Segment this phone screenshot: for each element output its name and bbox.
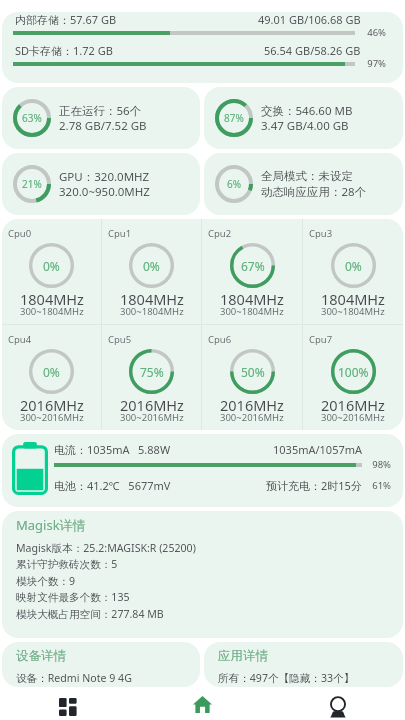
- staticText: 全局模式：未设定: [261, 169, 353, 184]
- staticText: 97%: [364, 57, 386, 70]
- staticText: 所有：497个【隐藏：33个】: [218, 671, 355, 685]
- staticText: 正在运行：56个: [59, 103, 142, 118]
- staticText: 3.47 GB/4.00 GB: [261, 118, 349, 133]
- staticText: Cpu3: [309, 227, 333, 240]
- staticText: 2.78 GB/7.52 GB: [59, 118, 147, 133]
- staticText: 2016MHz: [20, 395, 84, 411]
- staticText: 1804MHz: [220, 289, 284, 305]
- staticText: 300~1804MHz: [120, 305, 184, 318]
- staticText: 320.0~950.0MHZ: [59, 184, 150, 199]
- staticText: 1035mA/1057mA: [273, 442, 363, 457]
- staticText: 300~1804MHz: [20, 305, 84, 318]
- staticText: 交换：546.60 MB: [261, 103, 353, 118]
- staticText: 61%: [369, 479, 391, 492]
- staticText: 设备：Redmi Note 9 4G: [16, 671, 132, 685]
- staticText: 300~2016MHz: [321, 411, 385, 424]
- staticText: 电流：1035mA 5.88W: [54, 442, 171, 457]
- staticText: 0%: [345, 258, 362, 274]
- staticText: 75%: [140, 364, 164, 380]
- button[interactable]: Profile: [270, 687, 405, 720]
- staticText: 内部存储：57.67 GB: [15, 12, 117, 27]
- staticText: 21%: [22, 177, 42, 191]
- staticText: 1804MHz: [120, 289, 184, 305]
- staticText: 预计充电：2时15分: [266, 478, 362, 493]
- staticText: 98%: [369, 458, 391, 471]
- staticText: 50%: [241, 364, 265, 380]
- staticText: 动态响应应用：28个: [261, 184, 367, 199]
- staticText: 0%: [43, 258, 60, 274]
- staticText: 300~2016MHz: [20, 411, 84, 424]
- staticText: Cpu1: [108, 227, 132, 240]
- staticText: Cpu2: [208, 227, 232, 240]
- staticText: GPU：320.0MHZ: [59, 169, 150, 184]
- staticText: 49.01 GB/106.68 GB: [258, 12, 361, 27]
- staticText: Cpu4: [8, 333, 32, 346]
- staticText: 87%: [224, 111, 244, 125]
- staticText: Magisk详情: [16, 516, 86, 534]
- staticText: 67%: [241, 258, 265, 274]
- staticText: Cpu6: [208, 333, 232, 346]
- staticText: 2016MHz: [321, 395, 385, 411]
- staticText: 300~1804MHz: [321, 305, 385, 318]
- staticText: 电池：41.2℃ 5677mV: [54, 478, 171, 493]
- staticText: 映射文件最多个数：135: [16, 590, 130, 604]
- staticText: 100%: [338, 364, 369, 380]
- staticText: 设备详情: [16, 648, 66, 664]
- staticText: 2016MHz: [220, 395, 284, 411]
- staticText: 模块大概占用空间：277.84 MB: [16, 607, 164, 621]
- staticText: 2016MHz: [120, 395, 184, 411]
- staticText: 46%: [364, 26, 386, 39]
- staticText: 63%: [22, 111, 42, 125]
- staticText: 1804MHz: [321, 289, 385, 305]
- staticText: 300~2016MHz: [220, 411, 284, 424]
- staticText: 1804MHz: [20, 289, 84, 305]
- staticText: 300~2016MHz: [120, 411, 184, 424]
- staticText: SD卡存储：1.72 GB: [15, 43, 113, 58]
- staticText: Cpu0: [8, 227, 32, 240]
- staticText: 6%: [227, 177, 242, 191]
- staticText: 0%: [143, 258, 160, 274]
- staticText: 0%: [43, 364, 60, 380]
- staticText: Cpu7: [309, 333, 333, 346]
- staticText: 模块个数：9: [16, 574, 76, 588]
- button[interactable]: Dashboard: [0, 687, 135, 720]
- staticText: 累计守护救砖次数：5: [16, 557, 118, 571]
- button[interactable]: Home: [135, 687, 270, 720]
- staticText: 300~1804MHz: [220, 305, 284, 318]
- staticText: Cpu5: [108, 333, 132, 346]
- staticText: 应用详情: [218, 648, 268, 664]
- staticText: Magisk版本：25.2:MAGISK:R (25200): [16, 541, 196, 555]
- staticText: 56.54 GB/58.26 GB: [264, 43, 361, 58]
